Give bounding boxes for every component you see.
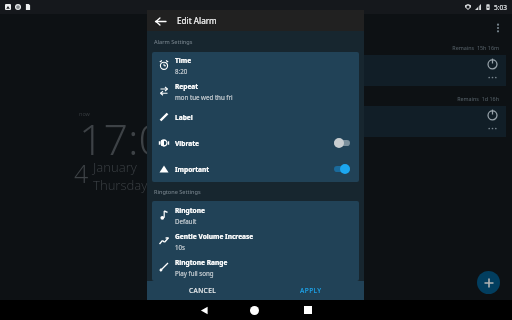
staticText: 17:0: [79, 109, 164, 168]
staticText: Default: [175, 217, 197, 225]
button[interactable]: Important toggle: [334, 164, 350, 174]
button[interactable]: APPLY: [258, 281, 364, 300]
staticText: Remains 1d 16h: [362, 95, 499, 102]
staticText: Time: [175, 56, 192, 65]
button[interactable]: Important: [152, 156, 359, 182]
button[interactable]: Back: [190, 300, 218, 320]
staticText: now: [79, 110, 90, 117]
staticText: mon tue wed thu fri: [175, 93, 233, 101]
staticText: 5:03: [494, 3, 507, 12]
button[interactable]: More options: [488, 18, 508, 38]
staticText: Edit Alarm: [177, 15, 217, 26]
button[interactable]: Add alarm: [477, 271, 500, 294]
button[interactable]: Toggle alarm: [486, 57, 499, 70]
staticText: Important: [175, 165, 210, 174]
button[interactable]: Label: [152, 104, 359, 130]
button[interactable]: Toggle alarm: [362, 55, 506, 86]
staticText: Remains 15h 16m: [362, 44, 499, 51]
button[interactable]: Gentle Volume Increase: [152, 228, 359, 254]
staticText: Repeat: [175, 82, 199, 91]
staticText: Vibrate: [175, 139, 199, 148]
button[interactable]: Toggle alarm: [486, 108, 499, 121]
button[interactable]: Toggle alarm: [362, 106, 506, 137]
button[interactable]: Time: [152, 52, 359, 78]
staticText: 4: [74, 156, 89, 190]
button[interactable]: Ringtone: [152, 202, 359, 228]
button[interactable]: Recents: [294, 300, 322, 320]
staticText: Gentle Volume Increase: [175, 232, 254, 241]
button[interactable]: Alarm menu: [486, 71, 499, 84]
button[interactable]: Vibrate: [152, 130, 359, 156]
button[interactable]: Ringtone Range: [152, 254, 359, 280]
button[interactable]: Home: [240, 300, 268, 320]
button[interactable]: Repeat: [152, 78, 359, 104]
staticText: CANCEL: [189, 286, 217, 295]
staticText: APPLY: [300, 286, 322, 295]
staticText: Alarm Settings: [154, 38, 193, 46]
staticText: Ringtone Range: [175, 258, 228, 267]
staticText: Ringtone: [175, 206, 205, 215]
staticText: January: [93, 158, 137, 176]
button[interactable]: Back: [152, 13, 168, 29]
button[interactable]: Vibrate toggle: [334, 138, 350, 148]
button[interactable]: CANCEL: [147, 281, 258, 300]
staticText: 10s: [175, 243, 186, 251]
staticText: Play full song: [175, 269, 214, 277]
staticText: Label: [175, 113, 193, 122]
button[interactable]: Alarm menu: [486, 122, 499, 135]
staticText: 8:20: [175, 67, 188, 75]
staticText: Thursday: [93, 176, 148, 194]
staticText: Ringtone Settings: [154, 188, 201, 196]
